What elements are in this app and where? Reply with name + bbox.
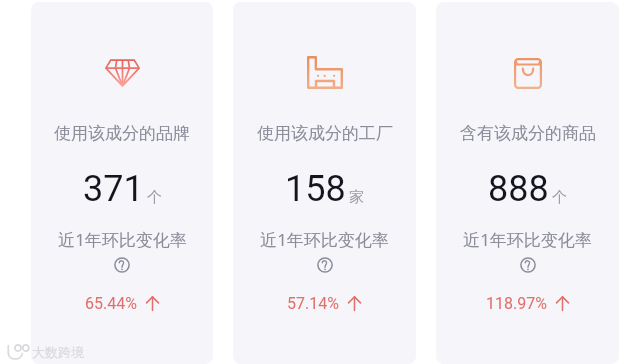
- staticText: 近1年环比变化率: [260, 228, 389, 251]
- button[interactable]: 帮助: [317, 257, 333, 273]
- staticText: 使用该成分的工厂: [257, 123, 393, 144]
- staticText: 371: [83, 168, 144, 210]
- staticText: 大数跨境: [32, 344, 84, 360]
- staticText: 近1年环比变化率: [58, 228, 187, 251]
- staticText: 使用该成分的品牌: [54, 123, 190, 144]
- staticText: 888: [488, 168, 549, 210]
- button[interactable]: 帮助: [114, 257, 130, 273]
- button[interactable]: 帮助: [520, 257, 536, 273]
- staticText: 近1年环比变化率: [463, 228, 592, 251]
- staticText: 118.97%: [486, 294, 547, 313]
- staticText: 65.44%: [85, 294, 137, 313]
- staticText: 家: [349, 188, 364, 207]
- button[interactable]: 使用该成分的品牌: [31, 2, 213, 364]
- staticText: 含有该成分的商品: [460, 123, 596, 144]
- button[interactable]: 含有该成分的商品: [436, 2, 619, 364]
- staticText: 个: [552, 188, 567, 207]
- staticText: 个: [147, 188, 162, 207]
- staticText: 158: [285, 168, 346, 210]
- button[interactable]: 使用该成分的工厂: [233, 2, 416, 364]
- staticText: 57.14%: [287, 294, 339, 313]
